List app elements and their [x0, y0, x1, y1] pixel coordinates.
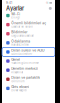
staticText: Duvar kagidi — [11, 89, 27, 92]
staticText: Yazilim güncelleme — [11, 61, 39, 65]
staticText: Denetim merkezi — [11, 66, 38, 70]
button[interactable]: Giris ekrani — [2, 84, 55, 93]
staticText: Ayarlar — [6, 5, 24, 12]
staticText: Ev Agi — [11, 16, 20, 19]
button[interactable]: Odaklanma — [2, 38, 55, 47]
button[interactable]: Ekran ve parlaklik — [2, 75, 55, 84]
staticText: Uyarilar ve sesler — [11, 25, 33, 28]
button[interactable]: Denetim merkezi — [2, 66, 55, 75]
staticText: Ekran ve parlaklik — [11, 76, 40, 80]
staticText: Görünüm — [11, 80, 24, 83]
staticText: 9:41 — [6, 1, 12, 5]
staticText: Odaklanma — [11, 39, 30, 43]
staticText: Rahatsiz etme — [11, 43, 29, 46]
button[interactable]: Bildirimler — [2, 29, 55, 38]
staticText: Genel — [11, 57, 20, 61]
button[interactable]: Account — [49, 7, 52, 10]
staticText: Giris ekrani — [11, 85, 29, 89]
button[interactable]: Wi-Fi — [2, 11, 55, 20]
staticText: Önemli bildirimleri aç — [11, 21, 46, 25]
button[interactable]: Önemli bildirimleri aç — [2, 20, 55, 29]
staticText: Uygulama uyarilari — [11, 34, 34, 37]
staticText: Günlük limitler — [11, 52, 32, 56]
staticText: Kisayollar — [11, 71, 23, 74]
staticText: Wi-Fi — [11, 12, 20, 16]
staticText: Bildirimler — [11, 30, 27, 34]
staticText: Ekran süresi ve ACID — [11, 48, 44, 52]
button[interactable]: Genel — [2, 56, 55, 66]
staticText: ·il — [46, 1, 49, 4]
button[interactable]: Ekran süresi ve ACID — [2, 47, 55, 56]
